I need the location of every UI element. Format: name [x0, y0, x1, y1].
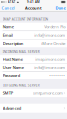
staticText: AT&T: [8, 0, 16, 4]
staticText: Vordern Pio: [44, 24, 65, 29]
staticText: SMTP: [3, 90, 13, 96]
staticText: Done: [55, 5, 65, 11]
staticText: iMore Onsite: [41, 41, 65, 46]
button[interactable]: Done: [54, 4, 67, 12]
button[interactable]: Password: [0, 72, 67, 79]
button[interactable]: Description: [0, 39, 67, 47]
staticText: info@imore.com: [34, 32, 65, 38]
button[interactable]: User Name: [0, 63, 67, 71]
staticText: Account: [25, 5, 42, 11]
staticText: info@imore.com: [34, 65, 65, 70]
staticText: Email: [3, 32, 13, 38]
staticText: smtp.imore.com: [33, 90, 63, 96]
staticText: OUTGOING MAIL SERVER: [3, 83, 40, 87]
button[interactable]: Cancel: [0, 4, 16, 12]
staticText: User Name: [3, 65, 24, 70]
staticText: Host Name: [3, 56, 23, 62]
button[interactable]: Name: [0, 23, 67, 31]
staticText: Name: [3, 24, 14, 29]
staticText: imap.imore.com: [35, 56, 65, 62]
button[interactable]: Host Name: [0, 55, 67, 63]
staticText: Cancel: [1, 5, 14, 11]
staticText: INCOMING MAIL SERVER: [3, 50, 40, 54]
staticText: Description: [3, 41, 24, 46]
staticText: Advanced: [3, 105, 21, 111]
staticText: ••••••••: [49, 73, 65, 78]
staticText: IMAP ACCOUNT INFORMATION: [3, 17, 48, 21]
staticText: 9:41 AM: [27, 0, 40, 4]
button[interactable]: Advanced: [0, 104, 67, 113]
button[interactable]: Email: [0, 31, 67, 39]
staticText: Password: [3, 73, 20, 78]
button[interactable]: SMTP: [0, 89, 67, 97]
